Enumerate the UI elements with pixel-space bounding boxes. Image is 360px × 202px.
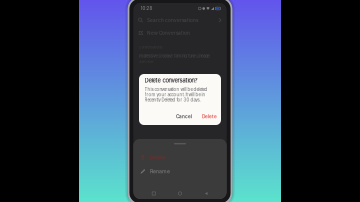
button[interactable]: Back [200, 188, 212, 198]
button[interactable]: Search conversations [133, 14, 226, 26]
staticText: Cancel [176, 114, 192, 119]
button[interactable]: Cancel [173, 112, 194, 121]
staticText: Impressive Disease Taming Tune Lineage [138, 53, 209, 58]
staticText: New Conversation [147, 30, 190, 36]
button[interactable]: New Conversation [133, 26, 226, 39]
staticText: Delete [150, 154, 166, 161]
staticText: Rename [150, 168, 170, 175]
button[interactable]: Home [174, 188, 186, 198]
button[interactable]: Rename [133, 164, 226, 178]
staticText: Search conversations [147, 17, 198, 23]
button[interactable]: Recent apps [148, 188, 160, 198]
button[interactable]: Delete [133, 150, 226, 164]
staticText: Just now [138, 59, 153, 64]
staticText: Conversations [138, 45, 162, 49]
staticText: This conversation will be deleted from y… [144, 87, 207, 102]
staticText: Delete conversation? [144, 77, 197, 84]
button[interactable]: Delete [199, 112, 219, 121]
staticText: Delete [202, 114, 217, 119]
staticText: 10:28 [140, 6, 152, 11]
button[interactable]: Impressive Disease Taming Tune Lineage [133, 53, 226, 64]
